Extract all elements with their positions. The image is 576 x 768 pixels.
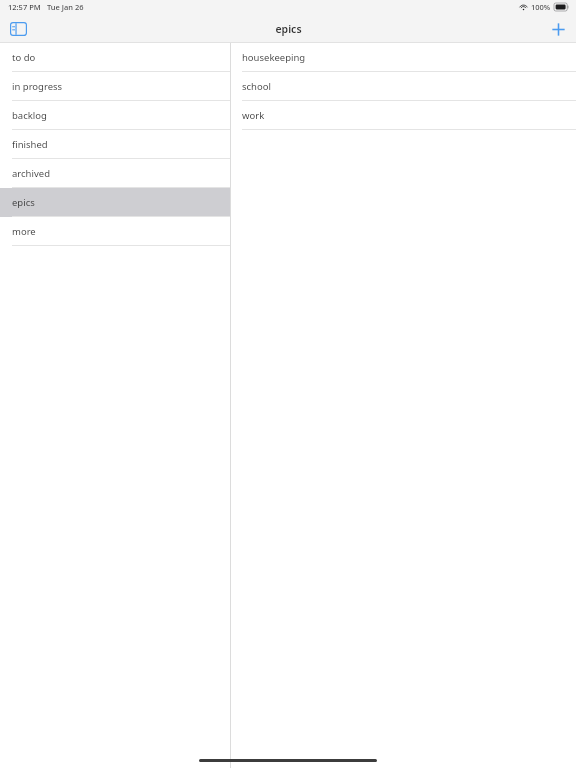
staticText: school <box>242 80 271 93</box>
staticText: more <box>12 225 36 238</box>
staticText: epics <box>275 22 302 36</box>
staticText: Tue Jan 26 <box>47 2 84 12</box>
staticText: archived <box>12 167 50 180</box>
staticText: housekeeping <box>242 51 306 64</box>
staticText: 100% <box>531 2 551 12</box>
staticText: finished <box>12 138 48 151</box>
staticText: 12:57 PM <box>8 2 41 12</box>
button[interactable]: archived <box>0 159 230 188</box>
staticText: backlog <box>12 109 47 122</box>
button[interactable]: backlog <box>0 101 230 130</box>
button[interactable]: housekeeping <box>231 43 576 72</box>
staticText: to do <box>12 51 36 64</box>
staticText: in progress <box>12 80 63 93</box>
button[interactable]: Add <box>544 16 572 42</box>
button[interactable]: in progress <box>0 72 230 101</box>
staticText: work <box>242 109 265 122</box>
button[interactable]: to do <box>0 43 230 72</box>
button[interactable]: school <box>231 72 576 101</box>
button[interactable]: work <box>231 101 576 130</box>
staticText: epics <box>12 196 35 209</box>
button[interactable]: Toggle sidebar <box>3 16 33 42</box>
button[interactable]: more <box>0 217 230 246</box>
button[interactable]: epics <box>0 188 230 217</box>
button[interactable]: finished <box>0 130 230 159</box>
